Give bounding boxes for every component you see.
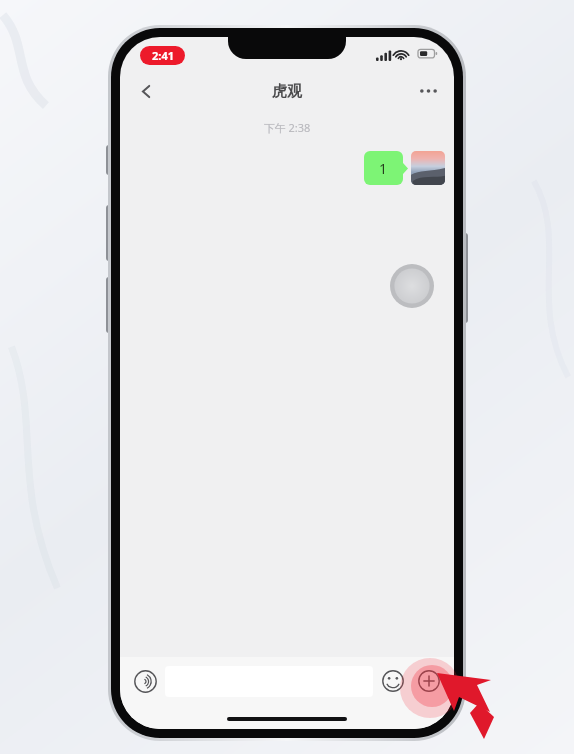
button[interactable]: Emoji bbox=[375, 663, 411, 699]
button[interactable]: Avatar bbox=[411, 151, 445, 185]
button[interactable]: Voice message bbox=[127, 663, 163, 699]
button[interactable]: More options bbox=[407, 70, 449, 112]
staticText: 1 bbox=[379, 159, 388, 178]
button[interactable]: AssistiveTouch bbox=[390, 264, 434, 308]
staticText: 虎观 bbox=[120, 82, 454, 101]
staticText: 2:41 bbox=[152, 48, 174, 63]
staticText: 下午 2:38 bbox=[120, 120, 454, 135]
button[interactable]: Back bbox=[125, 70, 167, 112]
button[interactable]: 1 bbox=[364, 151, 408, 185]
button[interactable]: More functions bbox=[411, 663, 447, 699]
